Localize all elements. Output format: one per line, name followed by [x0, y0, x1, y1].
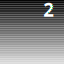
staticText: 2 [43, 0, 54, 22]
